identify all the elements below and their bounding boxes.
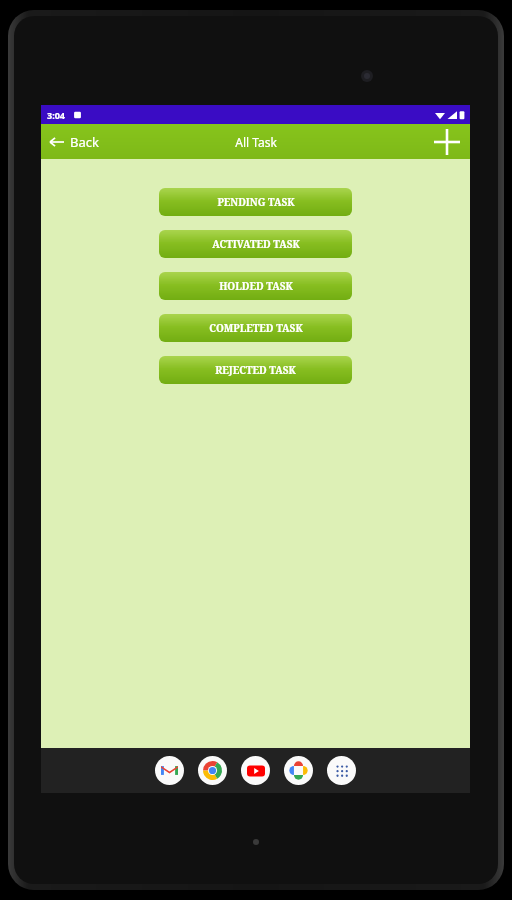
staticText: REJECTED TASK — [215, 363, 296, 377]
button[interactable]: COMPLETED TASK — [159, 314, 352, 342]
button[interactable]: Back — [41, 127, 107, 157]
staticText: ACTIVATED TASK — [212, 237, 300, 251]
staticText: HOLDED TASK — [219, 279, 293, 293]
button[interactable]: Photos — [284, 756, 313, 785]
button[interactable]: Apps — [327, 756, 356, 785]
button[interactable]: ACTIVATED TASK — [159, 230, 352, 258]
button[interactable]: YouTube — [241, 756, 270, 785]
button[interactable]: HOLDED TASK — [159, 272, 352, 300]
button[interactable]: Add task — [424, 125, 470, 159]
staticText: COMPLETED TASK — [209, 321, 303, 335]
staticText: All Task — [235, 134, 277, 150]
staticText: Back — [70, 133, 99, 151]
button[interactable]: PENDING TASK — [159, 188, 352, 216]
button[interactable]: Chrome — [198, 756, 227, 785]
button[interactable]: REJECTED TASK — [159, 356, 352, 384]
button[interactable]: Gmail — [155, 756, 184, 785]
staticText: PENDING TASK — [217, 195, 295, 209]
staticText: 3:04 — [47, 109, 65, 121]
